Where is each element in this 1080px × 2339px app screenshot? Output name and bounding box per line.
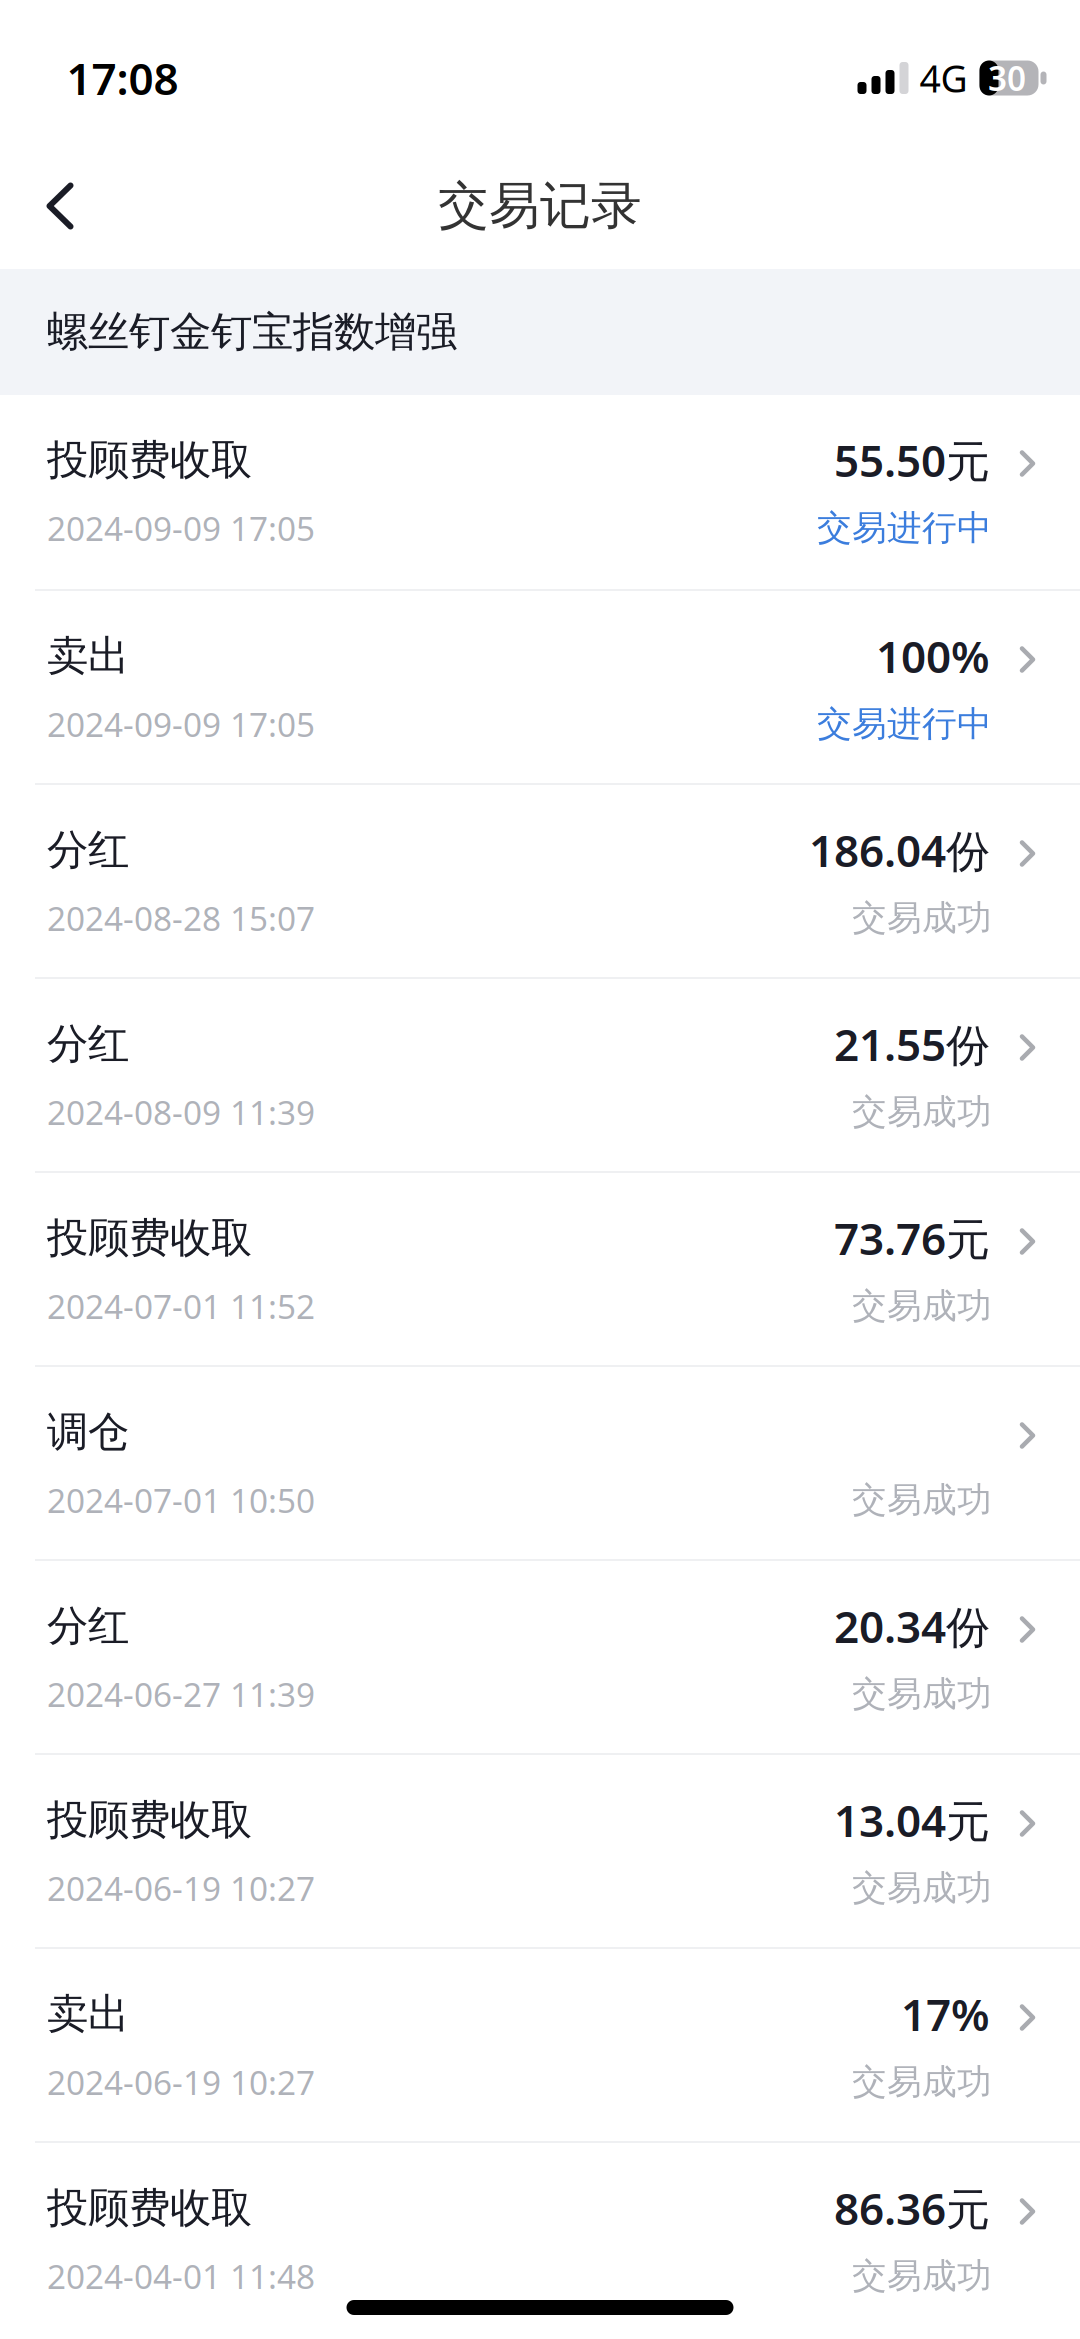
- staticText: 21.55份: [834, 1015, 990, 1073]
- button[interactable]: 卖出: [0, 1949, 1080, 2141]
- staticText: 2024-09-09 17:05: [47, 506, 315, 550]
- button[interactable]: 卖出: [0, 591, 1080, 783]
- staticText: 交易成功: [852, 1867, 992, 1909]
- staticText: 交易成功: [852, 1479, 992, 1521]
- staticText: 55.50元: [834, 431, 990, 489]
- staticText: 2024-06-19 10:27: [47, 2060, 315, 2104]
- staticText: 交易成功: [852, 1091, 992, 1133]
- staticText: 交易进行中: [817, 507, 992, 549]
- button[interactable]: 分红: [0, 979, 1080, 1171]
- staticText: 2024-07-01 10:50: [47, 1478, 315, 1522]
- staticText: 交易成功: [852, 1673, 992, 1715]
- staticText: 分红: [47, 825, 129, 875]
- staticText: 螺丝钉金钉宝指数增强: [47, 307, 457, 357]
- staticText: 13.04元: [834, 1791, 990, 1849]
- staticText: 交易成功: [852, 897, 992, 939]
- staticText: 投顾费收取: [47, 1795, 252, 1845]
- staticText: 30: [988, 56, 1026, 100]
- button[interactable]: 投顾费收取: [0, 1755, 1080, 1947]
- staticText: 186.04份: [809, 821, 990, 879]
- button[interactable]: 投顾费收取: [0, 2143, 1080, 2335]
- staticText: 投顾费收取: [47, 2183, 252, 2233]
- button[interactable]: 投顾费收取: [0, 1173, 1080, 1365]
- staticText: 卖出: [47, 1989, 129, 2039]
- button[interactable]: Back: [0, 181, 98, 231]
- staticText: 4G: [919, 53, 967, 103]
- button[interactable]: 投顾费收取: [0, 395, 1080, 587]
- staticText: 73.76元: [834, 1209, 990, 1267]
- staticText: 17:08: [66, 49, 178, 107]
- staticText: 投顾费收取: [47, 1213, 252, 1263]
- staticText: 交易记录: [438, 175, 642, 237]
- staticText: 100%: [876, 627, 990, 685]
- staticText: 17%: [901, 1985, 990, 2043]
- staticText: 2024-06-27 11:39: [47, 1672, 315, 1716]
- staticText: 交易进行中: [817, 703, 992, 745]
- staticText: 20.34份: [834, 1597, 990, 1655]
- staticText: 调仓: [47, 1407, 129, 1457]
- staticText: 86.36元: [834, 2179, 990, 2237]
- staticText: 2024-07-01 11:52: [47, 1284, 315, 1328]
- staticText: 交易成功: [852, 2061, 992, 2103]
- staticText: 2024-08-28 15:07: [47, 896, 315, 940]
- button[interactable]: 调仓: [0, 1367, 1080, 1559]
- staticText: 交易成功: [852, 1285, 992, 1327]
- staticText: 交易成功: [852, 2255, 992, 2297]
- staticText: 投顾费收取: [47, 435, 252, 485]
- button[interactable]: 分红: [0, 1561, 1080, 1753]
- staticText: 分红: [47, 1019, 129, 1069]
- staticText: 2024-08-09 11:39: [47, 1090, 315, 1134]
- staticText: 2024-04-01 11:48: [47, 2254, 315, 2298]
- staticText: 分红: [47, 1601, 129, 1651]
- staticText: 2024-06-19 10:27: [47, 1866, 315, 1910]
- staticText: 卖出: [47, 631, 129, 681]
- button[interactable]: 分红: [0, 785, 1080, 977]
- staticText: 2024-09-09 17:05: [47, 702, 315, 746]
